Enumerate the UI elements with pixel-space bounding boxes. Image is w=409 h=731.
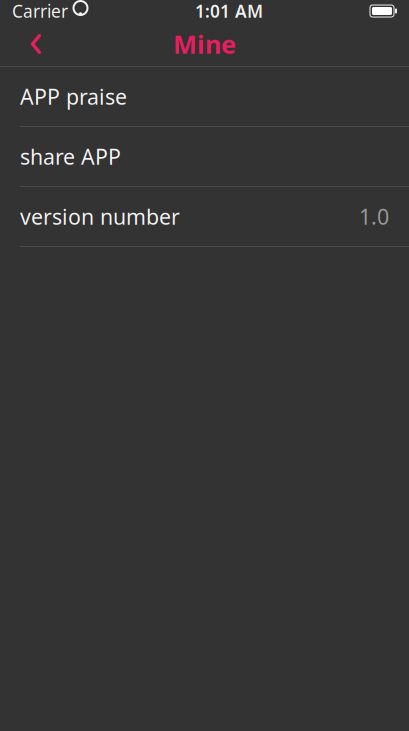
staticText: share APP [20,142,121,171]
staticText: version number [20,202,180,231]
button[interactable]: version number [0,187,409,246]
staticText: Carrier [12,0,68,22]
button[interactable]: Back [14,22,58,66]
staticText: Mine [173,27,236,61]
staticText: APP praise [20,82,127,111]
staticText: 1.0 [359,202,389,231]
button[interactable]: APP praise [0,67,409,126]
button[interactable]: share APP [0,127,409,186]
staticText: 1:01 AM [195,0,263,22]
